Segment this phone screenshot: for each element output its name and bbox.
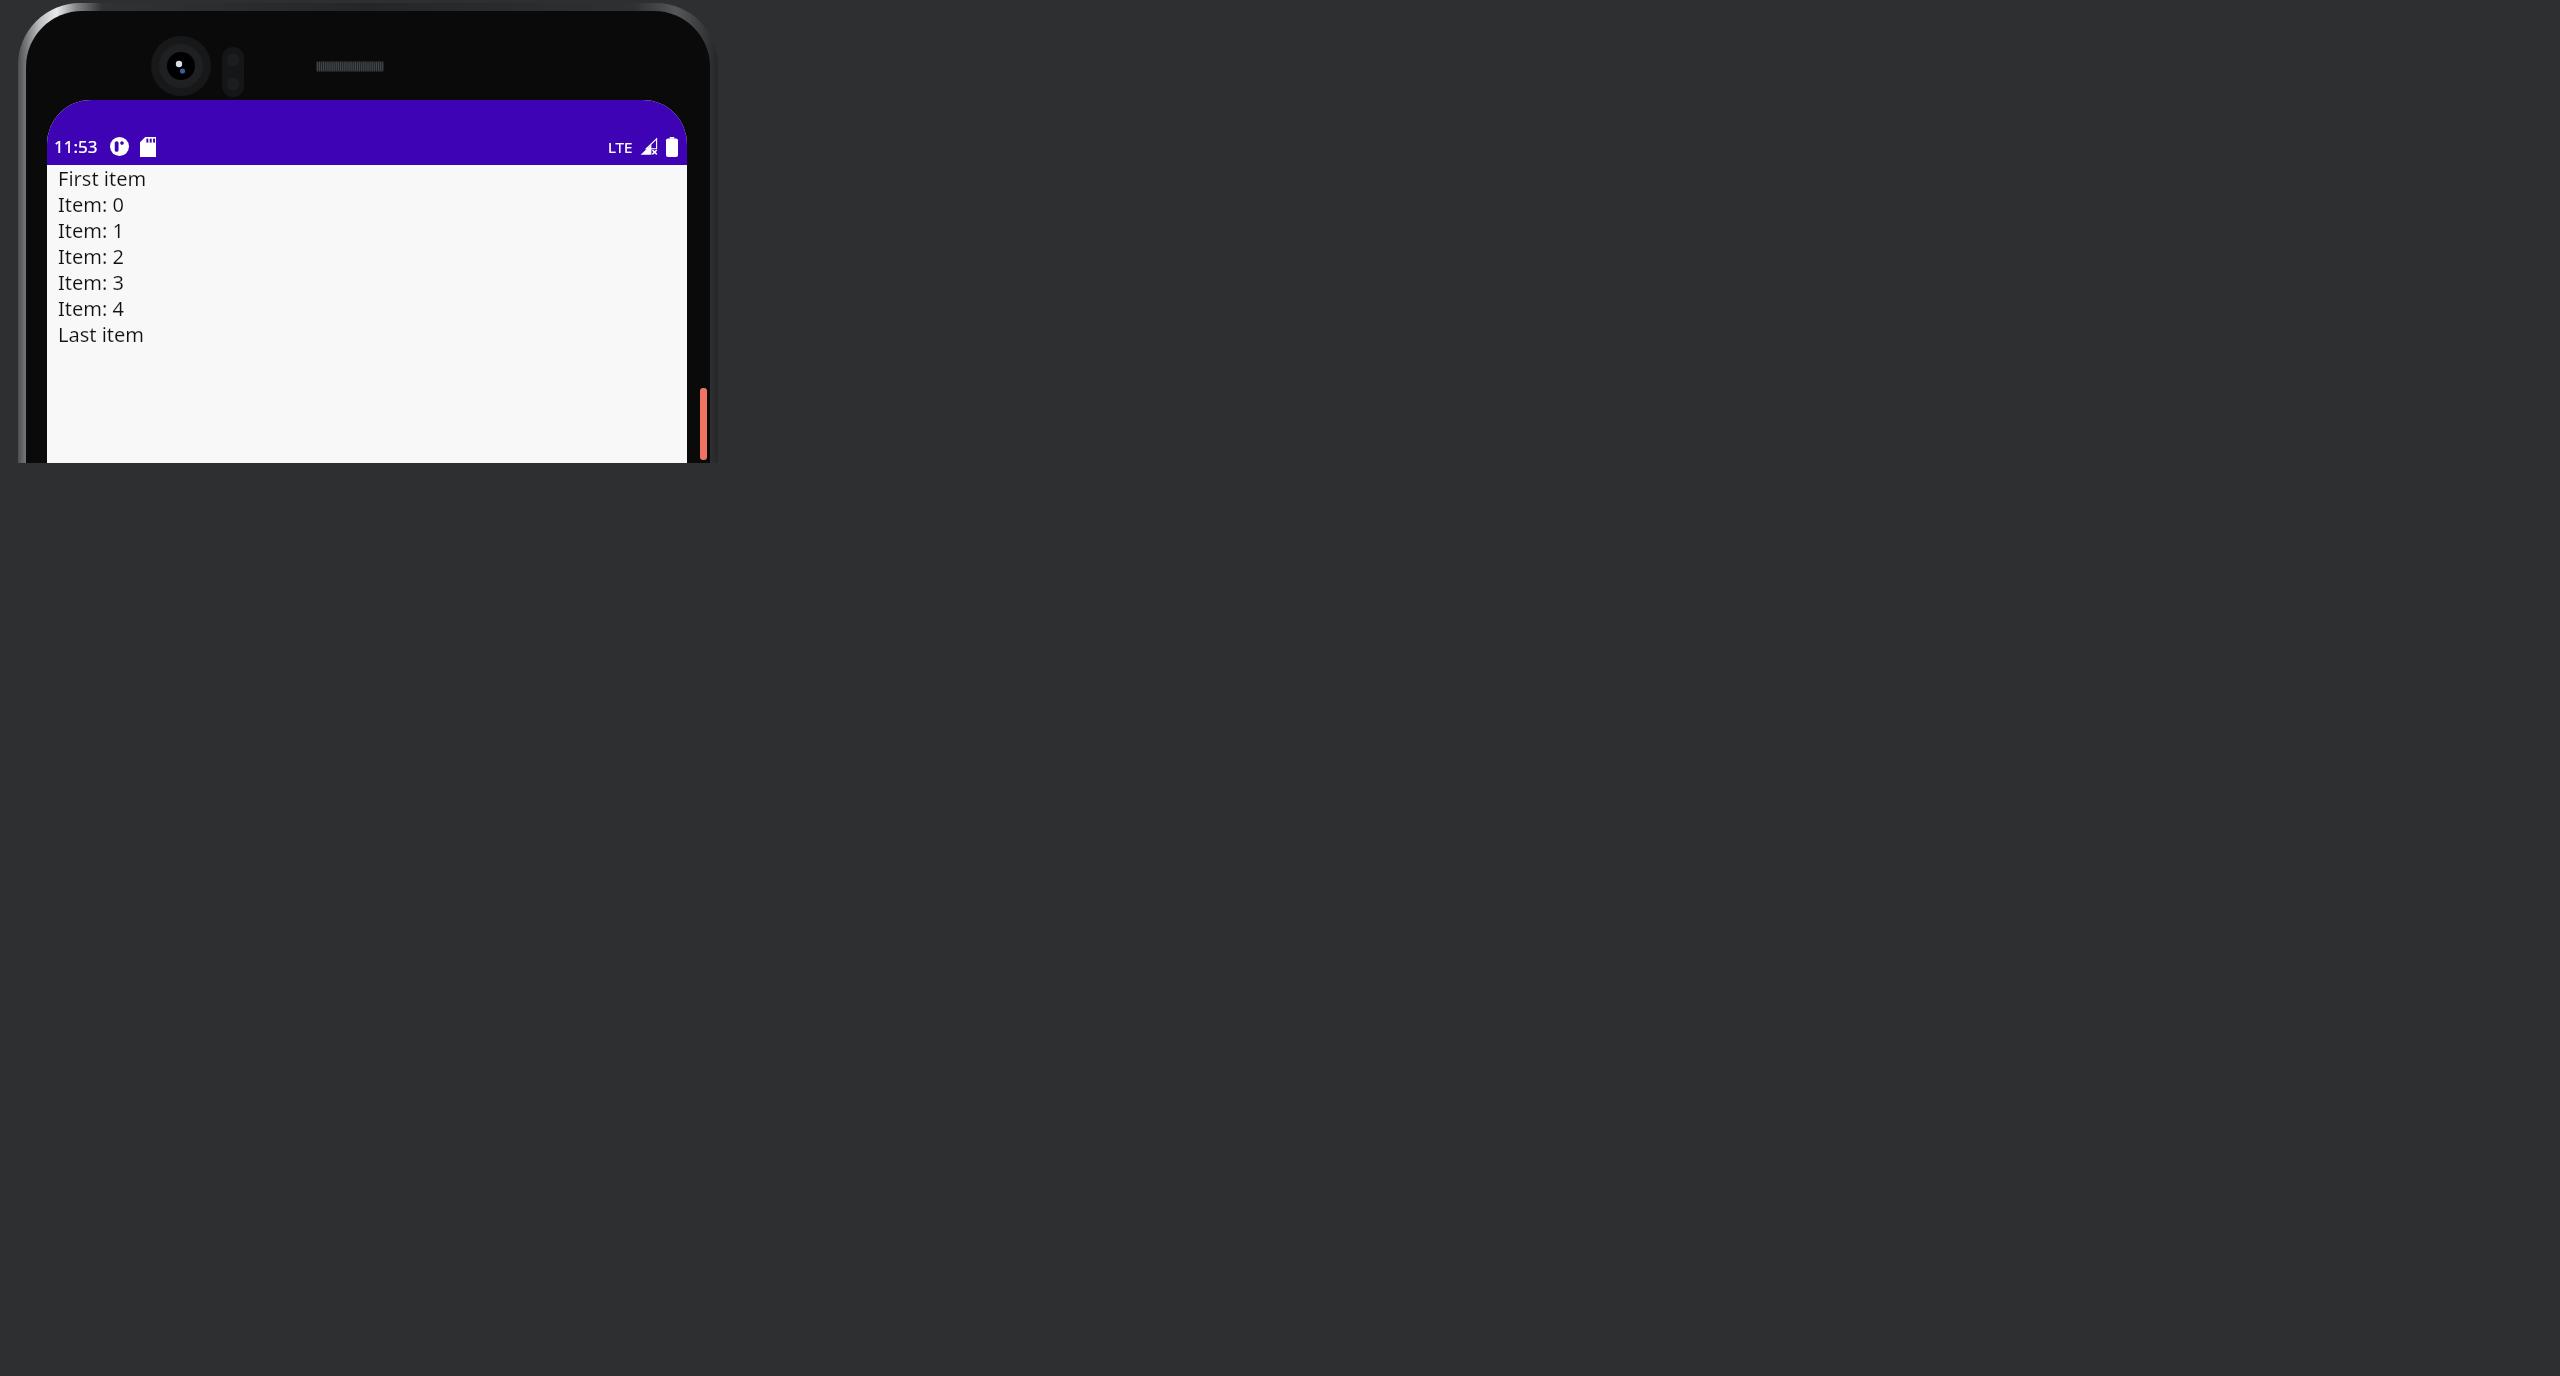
button[interactable]: Last item: [47, 321, 687, 347]
button[interactable]: Item: 4: [47, 295, 687, 321]
other: Power button: [700, 388, 707, 460]
staticText: 11:53: [54, 135, 98, 158]
staticText: LTE: [608, 137, 633, 157]
button[interactable]: Item: 1: [47, 217, 687, 243]
staticText: Item: 1: [58, 217, 124, 243]
button[interactable]: Item: 0: [47, 191, 687, 217]
staticText: Item: 4: [58, 295, 124, 321]
button[interactable]: Item: 2: [47, 243, 687, 269]
button[interactable]: First item: [47, 165, 687, 191]
button[interactable]: Item: 3: [47, 269, 687, 295]
staticText: Last item: [58, 321, 145, 347]
staticText: First item: [58, 165, 147, 191]
staticText: Item: 2: [58, 243, 124, 269]
staticText: Item: 0: [58, 191, 124, 217]
staticText: Item: 3: [58, 269, 124, 295]
